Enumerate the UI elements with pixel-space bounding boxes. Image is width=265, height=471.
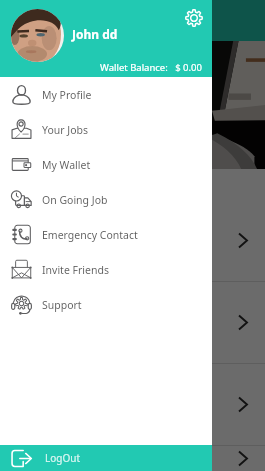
staticText: Wallet Balance: $ 0.00 <box>100 61 202 74</box>
staticText: Your Jobs <box>42 123 89 137</box>
button[interactable]: On Going Job <box>0 182 212 217</box>
button[interactable]: Invite Friends <box>0 252 212 287</box>
button[interactable]: Your Jobs <box>0 112 212 147</box>
staticText: LogOut <box>45 451 81 465</box>
staticText: On Going Job <box>42 193 108 207</box>
button[interactable]: Support <box>0 287 212 322</box>
button[interactable] <box>0 364 265 445</box>
button[interactable]: My Wallet <box>0 147 212 182</box>
button[interactable] <box>0 282 265 363</box>
staticText: Emergency Contact <box>42 228 138 242</box>
button[interactable]: My Profile <box>0 77 212 112</box>
button[interactable] <box>0 200 265 281</box>
staticText: John dd <box>72 26 118 42</box>
button[interactable] <box>0 446 265 471</box>
staticText: Invite Friends <box>42 263 109 277</box>
button[interactable]: LogOut <box>0 445 212 471</box>
button[interactable]: Settings <box>185 9 203 27</box>
staticText: My Wallet <box>42 158 91 172</box>
staticText: My Profile <box>42 88 92 102</box>
button[interactable]: Emergency Contact <box>0 217 212 252</box>
staticText: Support <box>42 298 82 312</box>
